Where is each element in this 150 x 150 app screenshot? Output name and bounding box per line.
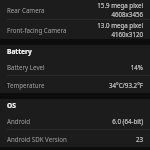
staticText: Android SDK Version [7, 135, 135, 143]
staticText: 15.9 mega pixel [97, 1, 143, 9]
staticText: OS [7, 101, 16, 110]
staticText: Rear Camera [7, 6, 97, 14]
button[interactable]: Rear Camera [0, 0, 150, 19]
staticText: Battery [7, 47, 32, 56]
button[interactable]: Front-facing Camera [0, 20, 150, 39]
staticText: 14% [130, 63, 143, 71]
staticText: 13.0 mega pixel [97, 21, 143, 29]
staticText: 6.0 (64-bit) [112, 117, 143, 125]
staticText: Battery Level [7, 63, 130, 71]
staticText: 23 [135, 135, 143, 143]
button[interactable]: Temperature [0, 76, 150, 93]
staticText: 4160x3120 [111, 30, 143, 38]
staticText: Android [7, 117, 112, 125]
button[interactable]: Android SDK Version [0, 130, 150, 147]
staticText: Temperature [7, 81, 108, 89]
button[interactable]: Android [0, 112, 150, 129]
staticText: 4608x3456 [111, 10, 143, 18]
button[interactable]: Battery Level [0, 58, 150, 75]
staticText: Front-facing Camera [7, 26, 97, 34]
staticText: 34°C/93.2°F [108, 81, 143, 89]
